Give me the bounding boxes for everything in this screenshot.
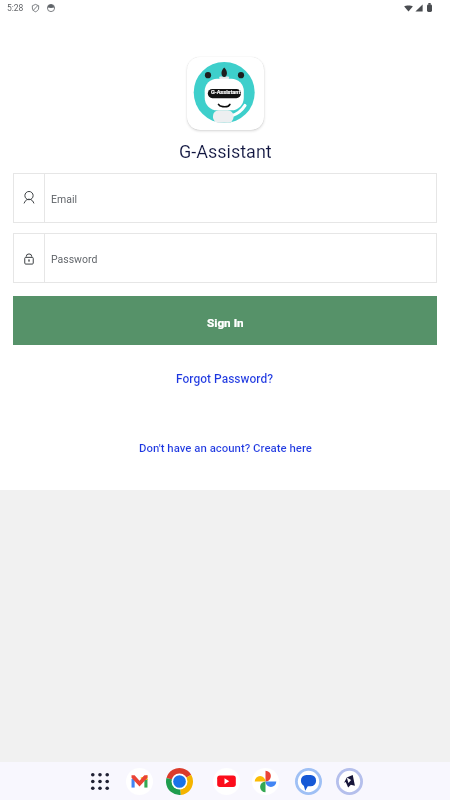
button[interactable]: Maps	[334, 766, 364, 796]
staticText: G-Assistant	[179, 141, 272, 162]
staticText: Email	[51, 193, 77, 205]
staticText: Sign In	[207, 316, 244, 330]
button[interactable]: YouTube	[211, 766, 241, 796]
button[interactable]: Chrome	[164, 766, 194, 796]
button[interactable]: Forgot Password?	[170, 368, 280, 390]
button[interactable]: Email	[13, 173, 437, 223]
button[interactable]: Messages	[293, 766, 323, 796]
button[interactable]: Don't have an acount? Create here	[133, 437, 318, 458]
button[interactable]: All apps	[85, 766, 115, 796]
staticText: Password	[51, 253, 98, 265]
button[interactable]: Gmail	[124, 766, 154, 796]
button[interactable]: Sign In	[13, 296, 437, 345]
staticText: G-Assistant	[211, 89, 241, 96]
button[interactable]: Photos	[250, 766, 280, 796]
staticText: 5:28	[7, 3, 24, 13]
button[interactable]: Password	[13, 233, 437, 283]
